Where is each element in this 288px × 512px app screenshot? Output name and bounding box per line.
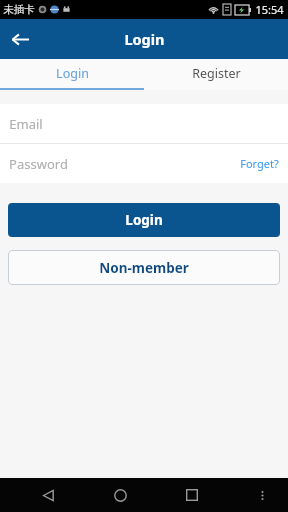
button[interactable]: Back <box>0 19 40 59</box>
button[interactable]: Home <box>103 478 137 512</box>
staticText: 15:54 <box>255 2 284 17</box>
staticText: Non-member <box>99 259 189 277</box>
button[interactable]: Non-member <box>8 250 280 285</box>
staticText: Login <box>56 65 89 82</box>
button[interactable]: Recent apps <box>175 478 209 512</box>
button[interactable]: Email <box>0 104 288 143</box>
staticText: Login <box>124 29 165 49</box>
staticText: Email <box>9 115 43 133</box>
button[interactable]: Login <box>0 59 144 88</box>
button[interactable]: Register <box>144 59 288 88</box>
button[interactable]: Forget? <box>237 152 282 175</box>
staticText: Register <box>192 65 241 82</box>
button[interactable]: More options <box>247 480 277 510</box>
staticText: Forget? <box>240 156 279 171</box>
button[interactable]: Back <box>31 478 65 512</box>
staticText: Password <box>9 155 68 173</box>
staticText: Login <box>125 211 163 229</box>
button[interactable]: Password <box>0 144 288 183</box>
staticText: 未插卡 <box>3 3 35 16</box>
button[interactable]: Login <box>8 203 280 237</box>
